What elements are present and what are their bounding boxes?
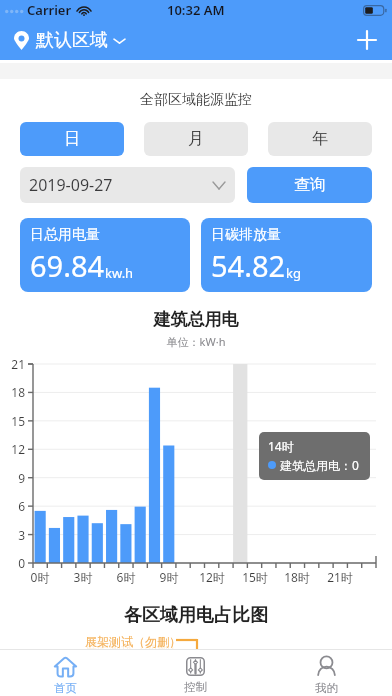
staticText: 18时 <box>277 569 317 585</box>
button[interactable]: Add <box>352 25 382 55</box>
staticText: 3时 <box>63 569 103 585</box>
staticText: 9时 <box>149 569 189 585</box>
staticText: 查询 <box>294 175 326 195</box>
button[interactable]: 首页 <box>0 650 130 696</box>
button[interactable]: 我的 <box>261 650 392 696</box>
staticText: 69.84 <box>30 246 105 285</box>
staticText: 21 <box>0 356 25 372</box>
staticText: 月 <box>188 129 204 149</box>
staticText: 日 <box>64 129 80 149</box>
staticText: 单位：kW·h <box>0 334 392 349</box>
button[interactable]: 月 <box>144 122 248 156</box>
staticText: 展架测试（勿删） <box>85 634 181 649</box>
button[interactable]: 日 <box>20 122 124 156</box>
staticText: 10:32 AM <box>167 1 225 19</box>
staticText: 18 <box>0 384 25 400</box>
staticText: 建筑总用电：0 <box>280 457 359 473</box>
staticText: 54.82 <box>211 246 286 285</box>
button[interactable]: 日总用电量 <box>20 218 190 292</box>
staticText: 日总用电量 <box>30 226 100 244</box>
button[interactable]: 查询 <box>247 167 372 203</box>
staticText: 0 <box>0 555 25 571</box>
staticText: 6 <box>0 498 25 514</box>
button[interactable]: 日碳排放量 <box>201 218 372 292</box>
staticText: 展架测试（勿删） <box>85 640 181 655</box>
staticText: 0时 <box>20 569 60 585</box>
staticText: 6时 <box>106 569 146 585</box>
staticText: 2019-09-27 <box>29 174 113 196</box>
staticText: 首页 <box>54 681 77 695</box>
staticText: Carrier <box>27 1 72 19</box>
staticText: 全部区域能源监控 <box>0 91 392 109</box>
staticText: 15 <box>0 413 25 429</box>
staticText: 各区域用电占比图 <box>0 604 392 627</box>
button[interactable]: 2019-09-27 <box>20 167 235 203</box>
staticText: 12时 <box>192 569 232 585</box>
staticText: 建筑总用电 <box>0 309 392 330</box>
button[interactable]: 默认区域 <box>14 29 125 52</box>
staticText: 默认区域 <box>36 29 108 52</box>
staticText: 3 <box>0 527 25 543</box>
staticText: 15时 <box>235 569 275 585</box>
staticText: 12 <box>0 441 25 457</box>
staticText: kg <box>286 264 301 282</box>
button[interactable]: 年 <box>268 122 372 156</box>
staticText: 9 <box>0 470 25 486</box>
staticText: 年 <box>312 129 328 149</box>
staticText: 21时 <box>320 569 360 585</box>
staticText: kw.h <box>105 264 134 282</box>
staticText: 日碳排放量 <box>211 226 281 244</box>
staticText: 14时 <box>268 438 294 454</box>
staticText: 控制 <box>184 680 207 694</box>
staticText: 我的 <box>315 681 338 695</box>
button[interactable]: 控制 <box>130 650 261 696</box>
